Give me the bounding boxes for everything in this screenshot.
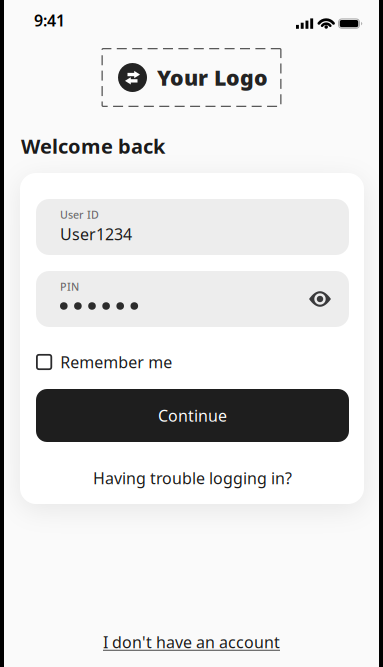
staticText: 9:41 xyxy=(34,10,65,31)
button[interactable]: Show PIN xyxy=(302,279,338,319)
button[interactable]: Having trouble logging in? xyxy=(36,467,349,489)
staticText: User1234 xyxy=(60,223,132,245)
staticText: Remember me xyxy=(60,351,172,373)
button[interactable]: I don't have an account xyxy=(103,630,280,654)
staticText: Your Logo xyxy=(157,63,268,92)
button[interactable]: Remember me xyxy=(36,348,349,376)
staticText: PIN xyxy=(60,279,79,294)
staticText: User ID xyxy=(60,207,99,222)
staticText: Welcome back xyxy=(21,133,165,159)
staticText: Having trouble logging in? xyxy=(93,467,292,489)
button[interactable]: Continue xyxy=(36,389,349,442)
staticText: Continue xyxy=(158,405,227,426)
staticText: I don't have an account xyxy=(103,631,280,653)
